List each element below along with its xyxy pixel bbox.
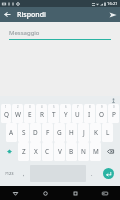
button[interactable]: S (18, 123, 29, 142)
staticText: Rispondi (17, 10, 46, 20)
button[interactable]: D (30, 123, 41, 142)
staticText: A (9, 128, 14, 137)
button[interactable]: Send (105, 7, 120, 22)
button[interactable]: 8 (84, 104, 95, 123)
staticText: Messaggio (9, 29, 40, 37)
staticText: 7 (77, 105, 79, 109)
button[interactable]: X (30, 142, 41, 161)
staticText: ?123 (5, 171, 14, 176)
staticText: M (93, 147, 99, 156)
staticText: 16:21 (107, 1, 118, 7)
staticText: 8 (89, 105, 91, 109)
button[interactable]: Shift (1, 142, 17, 161)
staticText: J (83, 128, 85, 137)
staticText: Z (22, 147, 26, 156)
staticText: G (57, 128, 62, 137)
staticText: H (69, 128, 74, 137)
button[interactable]: 4 (36, 104, 47, 123)
staticText: Y (64, 110, 68, 119)
button[interactable]: 1 (1, 104, 11, 123)
staticText: . (91, 170, 93, 177)
button[interactable]: A (6, 123, 17, 142)
staticText: X (34, 147, 38, 156)
button[interactable]: Z (18, 142, 29, 161)
staticText: L (106, 128, 110, 137)
button[interactable]: N (78, 142, 89, 161)
staticText: Q (4, 110, 9, 119)
button[interactable]: Backspace (102, 142, 119, 161)
button[interactable]: J (78, 123, 89, 142)
button[interactable]: G (54, 123, 65, 142)
staticText: F (46, 128, 50, 137)
staticText: 3 (29, 105, 31, 109)
button[interactable]: K (90, 123, 101, 142)
button[interactable]: C (42, 142, 53, 161)
staticText: D (33, 128, 38, 137)
button[interactable]: 9 (96, 104, 107, 123)
staticText: B (69, 147, 74, 156)
button[interactable]: Back (0, 7, 15, 22)
staticText: T (52, 110, 56, 119)
button[interactable]: M (90, 142, 101, 161)
staticText: K (94, 128, 98, 137)
button[interactable]: Change keyboard (90, 186, 120, 200)
button[interactable]: Period (87, 161, 97, 186)
staticText: 9 (101, 105, 103, 109)
button[interactable]: Comma (19, 161, 29, 186)
staticText: 0 (113, 105, 115, 109)
button[interactable]: 3 (24, 104, 35, 123)
staticText: O (99, 110, 104, 119)
button[interactable]: L (102, 123, 113, 142)
button[interactable]: F (42, 123, 53, 142)
staticText: S (22, 128, 26, 137)
staticText: R (40, 110, 44, 119)
button[interactable]: Voice input (109, 96, 117, 104)
button[interactable]: H (66, 123, 77, 142)
button[interactable]: 0 (108, 104, 119, 123)
staticText: E (28, 110, 32, 119)
button[interactable]: 2 (12, 104, 23, 123)
staticText: U (75, 110, 80, 119)
staticText: 4 (41, 105, 43, 109)
staticText: 5 (53, 105, 55, 109)
staticText: N (81, 147, 86, 156)
button[interactable]: ?123 (1, 161, 18, 186)
button[interactable]: Recent apps (60, 186, 90, 200)
button[interactable]: 6 (60, 104, 71, 123)
staticText: C (45, 147, 50, 156)
staticText: V (58, 147, 62, 156)
button[interactable]: Enter (98, 161, 119, 186)
button[interactable]: 7 (72, 104, 83, 123)
button[interactable]: 5 (48, 104, 59, 123)
button[interactable]: V (54, 142, 65, 161)
button[interactable]: Home (30, 186, 60, 200)
staticText: W (15, 110, 21, 119)
staticText: 2 (17, 105, 19, 109)
staticText: 6 (65, 105, 67, 109)
staticText: P (112, 110, 116, 119)
button[interactable]: Back (0, 186, 30, 200)
staticText: I (88, 110, 91, 119)
button[interactable]: B (66, 142, 77, 161)
staticText: 1 (5, 105, 7, 109)
staticText: , (23, 170, 25, 177)
button[interactable]: Messaggio (9, 29, 111, 40)
